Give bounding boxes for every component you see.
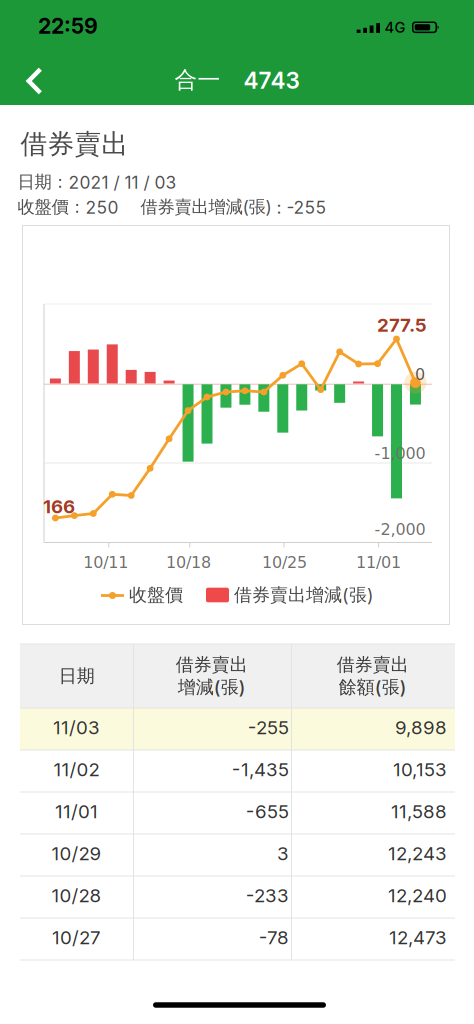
staticText: 借券賣出	[20, 127, 128, 161]
staticText: -78	[259, 926, 289, 949]
staticText: 借券賣出 餘額(張)	[336, 653, 408, 699]
staticText: 日期	[58, 665, 94, 687]
button[interactable]: 11/03	[20, 708, 455, 750]
staticText: 日期：2021 / 11 / 03	[17, 171, 176, 193]
staticText: 22:59	[38, 13, 98, 39]
staticText: -255	[248, 716, 289, 739]
staticText: 10/18	[166, 553, 211, 572]
staticText: 9,898	[395, 716, 447, 739]
staticText: 166	[43, 495, 75, 518]
staticText: 10/28	[51, 884, 101, 907]
button[interactable]: 10/28	[20, 876, 455, 918]
staticText: 收盤價	[129, 584, 183, 606]
staticText: 12,473	[389, 926, 447, 949]
button[interactable]: Back	[4, 52, 64, 110]
staticText: -655	[246, 800, 289, 823]
staticText: 4G	[384, 18, 405, 36]
staticText: 11/01	[55, 800, 98, 823]
button[interactable]: 11/01	[20, 792, 455, 834]
staticText: 10/25	[262, 553, 307, 572]
staticText: -233	[246, 884, 289, 907]
staticText: 12,243	[388, 842, 447, 865]
staticText: 3	[277, 842, 289, 865]
staticText: 10/29	[51, 842, 101, 865]
staticText: -1,435	[232, 758, 289, 781]
staticText: 11/02	[53, 758, 99, 781]
staticText: 10,153	[393, 758, 447, 781]
button[interactable]: 10/27	[20, 918, 455, 960]
button[interactable]: 10/29	[20, 834, 455, 876]
staticText: 借券賣出增減(張)	[234, 584, 374, 606]
staticText: 11/01	[356, 553, 401, 572]
staticText: -1,000	[374, 444, 425, 463]
staticText: 277.5	[377, 314, 427, 336]
button[interactable]: 11/02	[20, 750, 455, 792]
staticText: 借券賣出 增減(張)	[175, 653, 247, 699]
staticText: 11,588	[391, 800, 447, 823]
staticText: 0	[415, 365, 425, 384]
staticText: 10/27	[52, 926, 101, 949]
staticText: 10/11	[83, 553, 128, 572]
staticText: 12,240	[388, 884, 447, 907]
staticText: 收盤價：250 借券賣出增減(張) : -255	[17, 196, 326, 218]
staticText: -2,000	[374, 520, 425, 539]
staticText: 11/03	[53, 716, 100, 739]
staticText: 合一 4743	[174, 66, 299, 94]
